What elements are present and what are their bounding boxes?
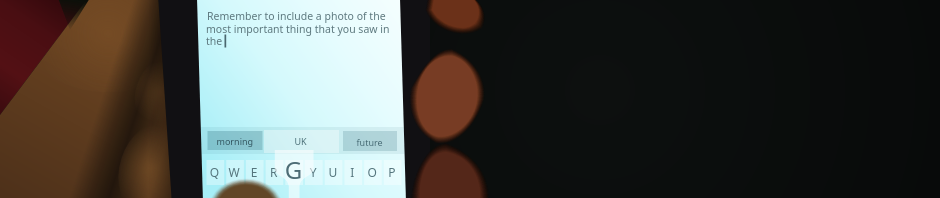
button[interactable]: morning — [207, 131, 262, 150]
button[interactable]: O — [363, 160, 381, 185]
button[interactable]: I — [343, 160, 361, 185]
button[interactable]: P — [383, 160, 401, 185]
button[interactable]: E — [245, 160, 263, 185]
button[interactable]: morning — [0, 0, 940, 198]
button[interactable]: Q — [206, 160, 224, 185]
button[interactable]: W — [225, 160, 243, 185]
button[interactable]: Y — [304, 160, 322, 185]
button[interactable]: U — [324, 160, 342, 185]
button[interactable]: UK — [264, 130, 339, 153]
button[interactable]: T — [284, 160, 302, 185]
button[interactable]: future — [343, 131, 397, 151]
button[interactable]: R — [265, 160, 283, 185]
